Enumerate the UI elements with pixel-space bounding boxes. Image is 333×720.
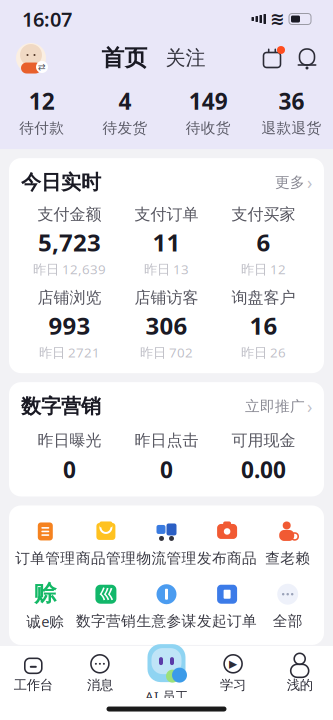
staticText: 支付订单	[134, 205, 198, 224]
button[interactable]: Notifications	[295, 46, 319, 70]
staticText: 关注	[165, 46, 205, 70]
button[interactable]: 关注	[165, 46, 205, 70]
button[interactable]: 立即推广	[245, 395, 312, 418]
button[interactable]: 巛	[76, 582, 136, 630]
staticText: 巛	[99, 586, 112, 602]
button[interactable]: 4	[83, 86, 166, 137]
button[interactable]: 发起订单	[197, 582, 257, 630]
button[interactable]: ▶	[200, 653, 266, 693]
staticText: 诚e赊	[26, 611, 64, 631]
staticText: 11	[152, 226, 180, 258]
button[interactable]: 浅的	[266, 653, 333, 693]
staticText: 发布商品	[197, 549, 257, 567]
staticText: 12	[29, 86, 55, 116]
staticText: 查老赖	[265, 549, 310, 567]
staticText: 0	[160, 454, 173, 484]
staticText: 4	[118, 86, 131, 116]
staticText: 16	[249, 310, 277, 341]
button[interactable]: 更多	[275, 171, 312, 194]
staticText: 昨日 12,639	[33, 260, 106, 278]
staticText: 商品管理	[76, 549, 136, 567]
staticText: 退款退货	[261, 119, 321, 137]
staticText: 爆品·改款	[104, 665, 153, 702]
staticText: 待付款	[19, 119, 64, 137]
staticText: 发起订单	[197, 612, 257, 630]
staticText: 支付金额	[37, 205, 101, 224]
staticText: 36	[278, 86, 304, 116]
staticText: 店铺浏览	[37, 288, 101, 308]
button[interactable]: 消息	[67, 653, 133, 693]
staticText: 可用现金	[231, 431, 295, 450]
staticText: 昨日 13	[144, 260, 189, 278]
staticText: 0.00	[241, 454, 286, 484]
staticText: 订单管理	[15, 549, 75, 567]
staticText: 今日实时	[21, 170, 101, 195]
staticText: 更多	[275, 173, 305, 191]
staticText: 店铺访客	[134, 288, 198, 308]
button[interactable]: 工作台	[0, 653, 67, 693]
button[interactable]: 商品管理	[76, 519, 136, 567]
button[interactable]: 支付订单	[118, 205, 215, 278]
button[interactable]: 查老赖	[257, 519, 318, 567]
button[interactable]: ✕	[9, 654, 324, 720]
staticText: 待发货	[102, 119, 147, 137]
staticText: ›	[307, 395, 312, 418]
staticText: 遨虾	[39, 678, 79, 703]
button[interactable]: Calendar	[259, 46, 285, 70]
staticText: 昨日 702	[140, 343, 193, 361]
button[interactable]: 赊	[15, 581, 76, 631]
button[interactable]: Account avatar	[14, 41, 48, 75]
button[interactable]: 发布商品	[197, 519, 257, 567]
staticText: 立即推广	[245, 397, 305, 415]
staticText: 商品素材全搞定	[158, 707, 222, 720]
staticText: 昨日点击	[134, 431, 198, 450]
staticText: 洞察下游市场需求	[158, 664, 222, 703]
button[interactable]: 12	[0, 86, 83, 137]
staticText: ⇄	[38, 62, 46, 72]
staticText: 浅的	[287, 677, 313, 693]
staticText: 5,723	[38, 226, 101, 258]
staticText: 做图·改图	[104, 708, 153, 720]
staticText: 待收货	[186, 119, 231, 137]
button[interactable]: 店铺浏览	[21, 288, 118, 361]
staticText: 工作台	[14, 677, 53, 693]
staticText: 询盘客户	[231, 288, 295, 308]
staticText: ›	[307, 171, 312, 194]
staticText: 数字营销	[76, 612, 136, 630]
button[interactable]: 店铺访客	[118, 288, 215, 361]
staticText: 全部	[273, 612, 303, 630]
staticText: 首页	[101, 44, 147, 72]
staticText: 数字营销	[21, 394, 101, 419]
staticText: 学习	[220, 677, 246, 693]
staticText: 149	[189, 86, 228, 116]
staticText: ▶	[229, 658, 237, 670]
button[interactable]: 生意参谋	[136, 582, 197, 630]
button[interactable]: 全部	[257, 582, 318, 630]
staticText: 支付买家	[231, 205, 295, 224]
staticText: ✕	[25, 683, 36, 698]
staticText: AI 员工	[145, 687, 188, 705]
staticText: 昨日曝光	[37, 431, 101, 450]
staticText: 赊	[34, 580, 57, 607]
button[interactable]: AI 员工	[133, 641, 200, 705]
staticText: 消息	[87, 677, 113, 693]
button[interactable]: 149	[166, 86, 250, 137]
staticText: 0	[63, 454, 76, 484]
button[interactable]: 支付金额	[21, 205, 118, 278]
button[interactable]: 支付买家	[215, 205, 312, 278]
staticText: 昨日 12	[241, 260, 286, 278]
staticText: 306	[145, 310, 187, 341]
staticText: 993	[48, 310, 90, 341]
staticText: 昨日 26	[241, 343, 286, 361]
staticText: 昨日 2721	[39, 343, 100, 361]
button[interactable]: 首页	[101, 44, 147, 72]
button[interactable]: 物流管理	[136, 519, 197, 567]
button[interactable]: 36	[250, 86, 333, 137]
staticText: ≋	[270, 9, 285, 29]
button[interactable]: 订单管理	[15, 519, 76, 567]
staticText: 生意参谋	[136, 612, 196, 630]
button[interactable]: 询盘客户	[215, 288, 312, 361]
